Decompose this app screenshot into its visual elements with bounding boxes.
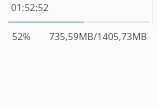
button[interactable]: Download progress 52 percent bbox=[8, 20, 150, 24]
staticText: 52% bbox=[12, 30, 31, 43]
button[interactable]: 01:52:52 bbox=[11, 1, 49, 14]
staticText: 735,59MB/1405,73MB bbox=[49, 30, 147, 43]
button[interactable]: 52% bbox=[0, 30, 158, 43]
